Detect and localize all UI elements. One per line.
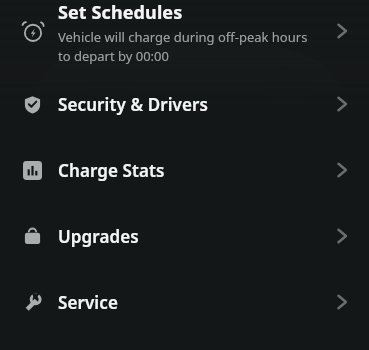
staticText: Service — [58, 291, 118, 314]
button[interactable]: Upgrades — [0, 203, 369, 269]
button[interactable]: Security & Drivers — [0, 71, 369, 137]
button[interactable]: Set Schedules — [0, 0, 369, 71]
staticText: Security & Drivers — [58, 93, 208, 116]
staticText: Upgrades — [58, 225, 139, 248]
button[interactable]: Charge Stats — [0, 137, 369, 203]
staticText: Set Schedules — [58, 0, 183, 25]
staticText: Charge Stats — [58, 159, 165, 182]
staticText: Vehicle will charge during off-peak hour… — [58, 28, 323, 65]
button[interactable]: Service — [0, 269, 369, 335]
